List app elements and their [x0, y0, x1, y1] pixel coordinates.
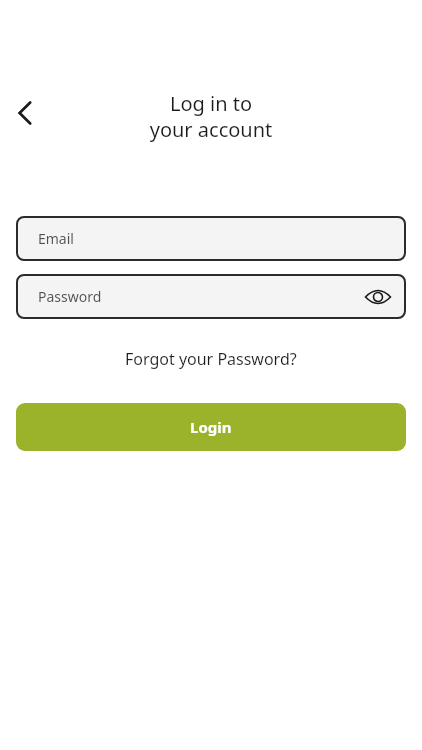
staticText: Email — [38, 229, 74, 248]
button[interactable] — [5, 93, 45, 133]
button[interactable]: Email — [16, 216, 406, 261]
button[interactable]: Login — [16, 403, 406, 451]
button[interactable]: Forgot your Password? — [125, 348, 297, 370]
staticText: Log in to your account — [0, 90, 422, 142]
button[interactable]: Password — [16, 274, 406, 319]
staticText: Login — [190, 417, 232, 437]
staticText: Password — [38, 287, 102, 306]
